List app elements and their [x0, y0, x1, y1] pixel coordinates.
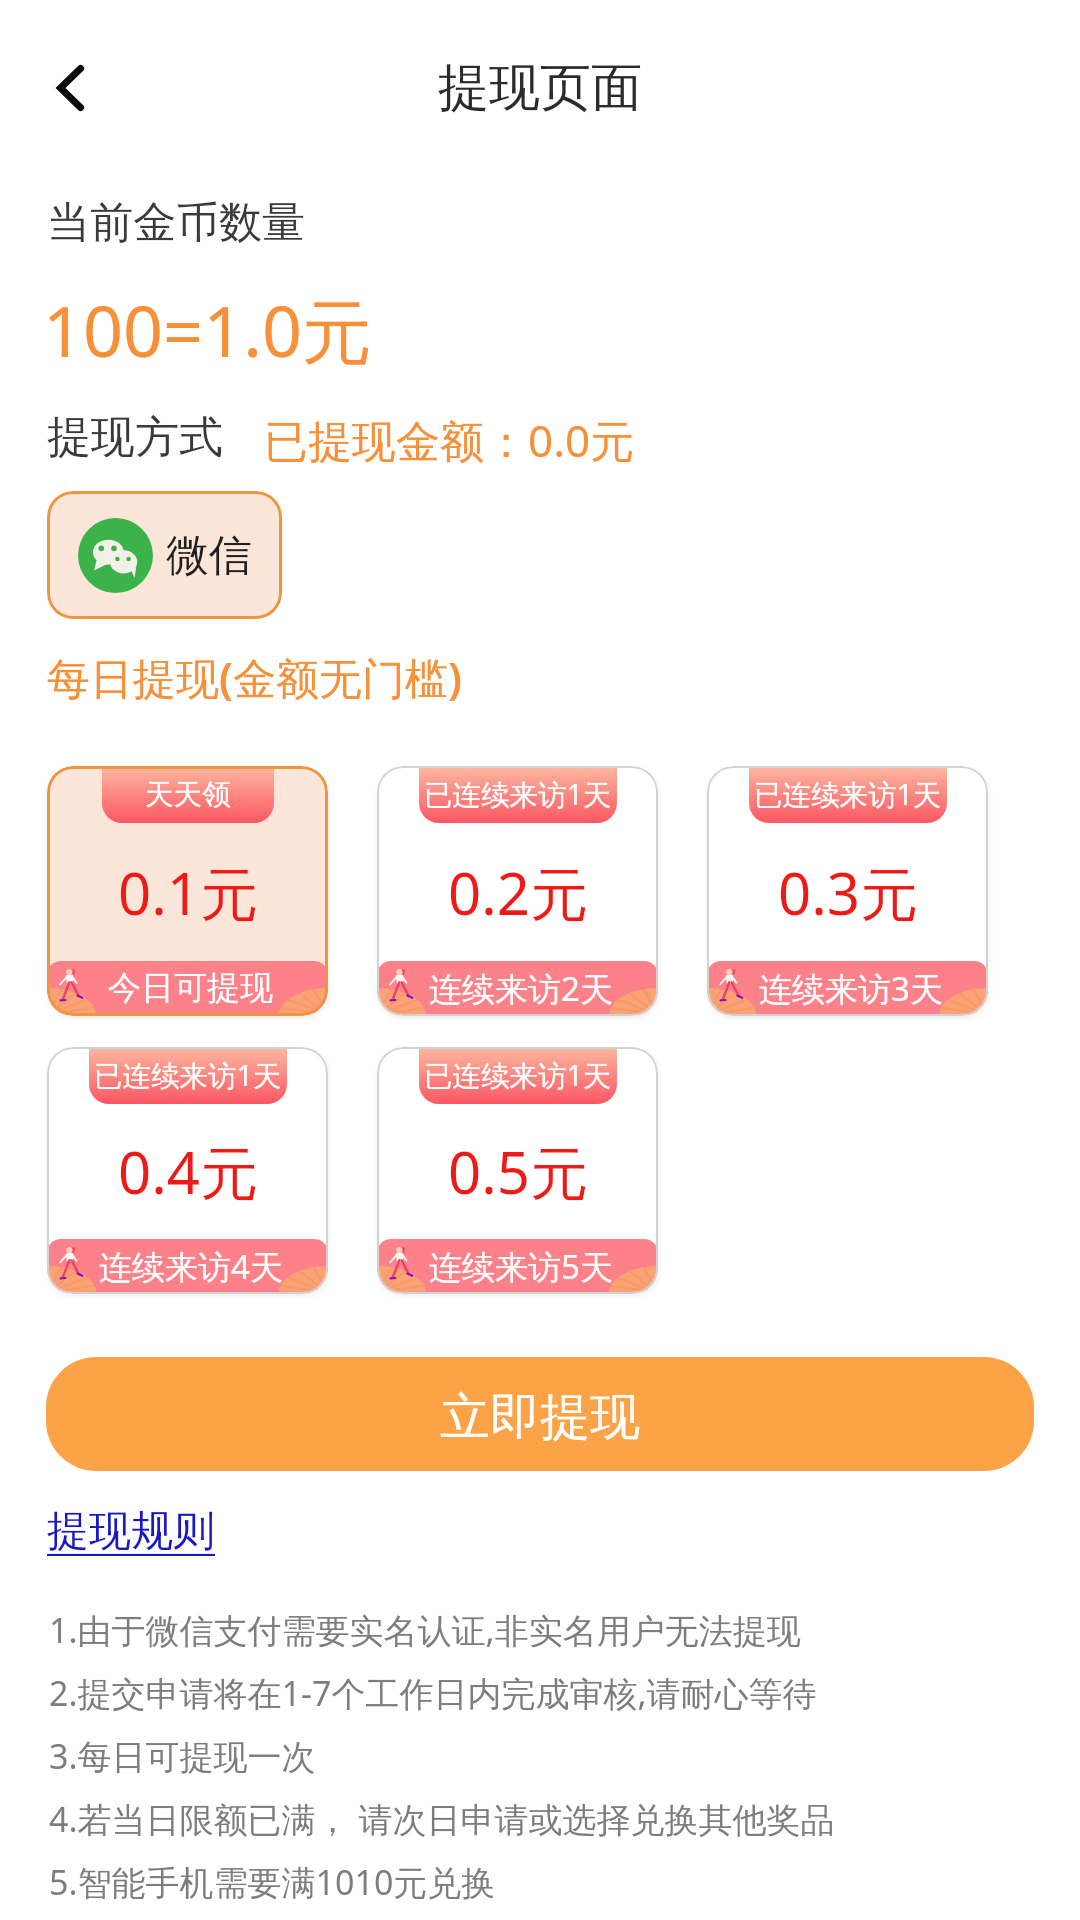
- staticText: 0.2元: [448, 853, 588, 932]
- staticText: 每日提现(金额无门槛): [47, 648, 462, 707]
- staticText: 提现规则: [47, 1505, 215, 1558]
- staticText: 0.4元: [118, 1132, 258, 1211]
- staticText: 0.5元: [448, 1132, 588, 1211]
- button[interactable]: 天天领: [47, 766, 328, 1016]
- staticText: 今日可提现: [108, 967, 273, 1009]
- staticText: 连续来访5天: [429, 1244, 613, 1289]
- staticText: 连续来访3天: [759, 966, 943, 1011]
- staticText: 提现方式: [47, 410, 223, 465]
- staticText: 立即提现: [440, 1386, 640, 1449]
- staticText: 100=1.0元: [43, 282, 372, 378]
- button[interactable]: Back: [30, 48, 110, 128]
- staticText: 天天领: [145, 777, 231, 813]
- staticText: 2.提交申请将在1-7个工作日内完成审核,请耐心等待: [49, 1670, 817, 1716]
- staticText: 已提现金额：0.0元: [264, 410, 635, 470]
- staticText: 已连续来访1天: [754, 775, 942, 814]
- staticText: 0.1元: [118, 853, 258, 932]
- staticText: 5.智能手机需要满1010元兑换: [49, 1859, 496, 1905]
- button[interactable]: 已连续来访1天: [47, 1047, 328, 1294]
- button[interactable]: 已连续来访1天: [707, 766, 988, 1016]
- staticText: 0.3元: [778, 853, 918, 932]
- button[interactable]: 微信: [47, 491, 282, 619]
- button[interactable]: 立即提现: [46, 1357, 1034, 1471]
- staticText: 1.由于微信支付需要实名认证,非实名用户无法提现: [49, 1607, 801, 1653]
- staticText: 提现页面: [438, 56, 642, 120]
- staticText: 当前金币数量: [47, 196, 305, 250]
- button[interactable]: 已连续来访1天: [377, 1047, 658, 1294]
- staticText: 已连续来访1天: [424, 1056, 612, 1095]
- staticText: 连续来访4天: [99, 1244, 283, 1289]
- staticText: 连续来访2天: [429, 966, 613, 1011]
- button[interactable]: 已连续来访1天: [377, 766, 658, 1016]
- staticText: 微信: [166, 529, 252, 583]
- button[interactable]: 提现规则: [47, 1505, 217, 1561]
- staticText: 4.若当日限额已满， 请次日申请或选择兑换其他奖品: [49, 1796, 835, 1842]
- staticText: 已连续来访1天: [94, 1056, 282, 1095]
- staticText: 已连续来访1天: [424, 775, 612, 814]
- staticText: 3.每日可提现一次: [49, 1733, 316, 1779]
